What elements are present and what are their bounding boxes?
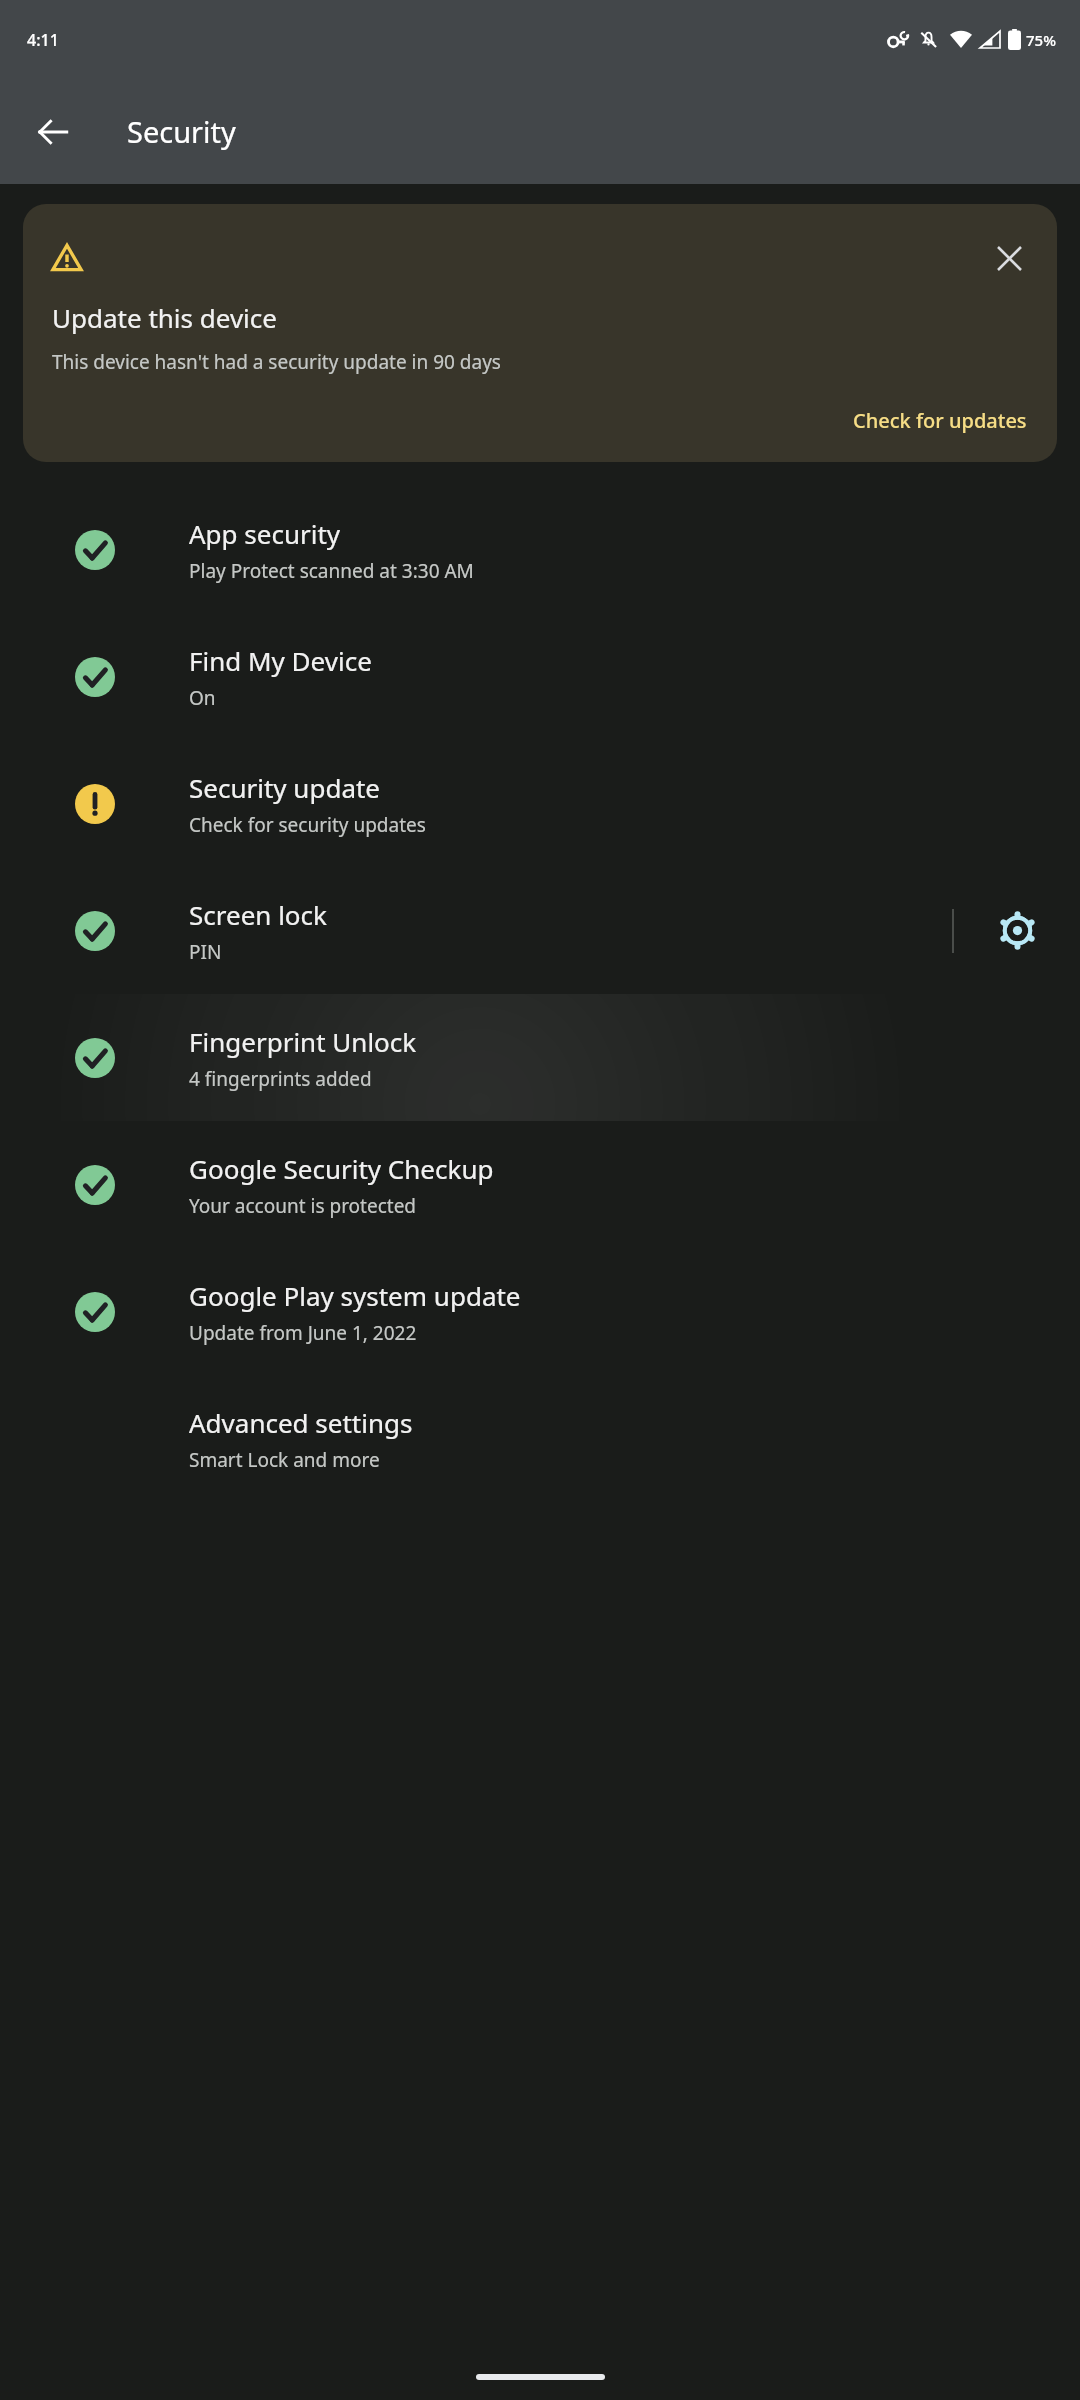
staticText: 75% bbox=[1026, 30, 1056, 50]
button[interactable]: Advanced settings bbox=[0, 1375, 1080, 1502]
staticText: This device hasn't had a security update… bbox=[52, 349, 501, 375]
button[interactable]: Fingerprint Unlock bbox=[0, 994, 1080, 1121]
button[interactable]: Check for updates bbox=[847, 401, 1033, 440]
staticText: Security bbox=[127, 112, 236, 151]
button[interactable]: Google Security Checkup bbox=[0, 1121, 1080, 1248]
staticText: Google Play system update bbox=[189, 1278, 521, 1313]
staticText: Check for security updates bbox=[189, 812, 426, 838]
button[interactable]: Google Play system update bbox=[0, 1248, 1080, 1375]
staticText: Screen lock bbox=[189, 897, 327, 932]
button[interactable]: Dismiss bbox=[985, 234, 1033, 282]
button[interactable]: Find My Device bbox=[0, 613, 1080, 740]
button[interactable]: Screen lock bbox=[0, 867, 1080, 994]
button[interactable]: Screen lock settings bbox=[954, 867, 1080, 994]
staticText: 4 fingerprints added bbox=[189, 1066, 372, 1092]
staticText: Play Protect scanned at 3:30 AM bbox=[189, 558, 474, 584]
staticText: Google Security Checkup bbox=[189, 1151, 494, 1186]
button[interactable]: App security bbox=[0, 486, 1080, 613]
button[interactable]: Security update bbox=[0, 740, 1080, 867]
staticText: Find My Device bbox=[189, 643, 372, 678]
staticText: Update this device bbox=[52, 300, 277, 335]
staticText: Smart Lock and more bbox=[189, 1447, 380, 1473]
staticText: App security bbox=[189, 516, 341, 551]
staticText: Security update bbox=[189, 770, 381, 805]
staticText: Fingerprint Unlock bbox=[189, 1024, 417, 1059]
staticText: Update from June 1, 2022 bbox=[189, 1320, 417, 1346]
staticText: PIN bbox=[189, 939, 222, 965]
staticText: On bbox=[189, 685, 216, 711]
staticText: 4:11 bbox=[27, 29, 59, 51]
button[interactable]: Dismiss bbox=[23, 204, 1057, 462]
staticText: Your account is protected bbox=[189, 1193, 417, 1219]
button[interactable]: Back bbox=[22, 101, 84, 163]
staticText: Advanced settings bbox=[189, 1405, 413, 1440]
staticText: Check for updates bbox=[853, 407, 1027, 434]
